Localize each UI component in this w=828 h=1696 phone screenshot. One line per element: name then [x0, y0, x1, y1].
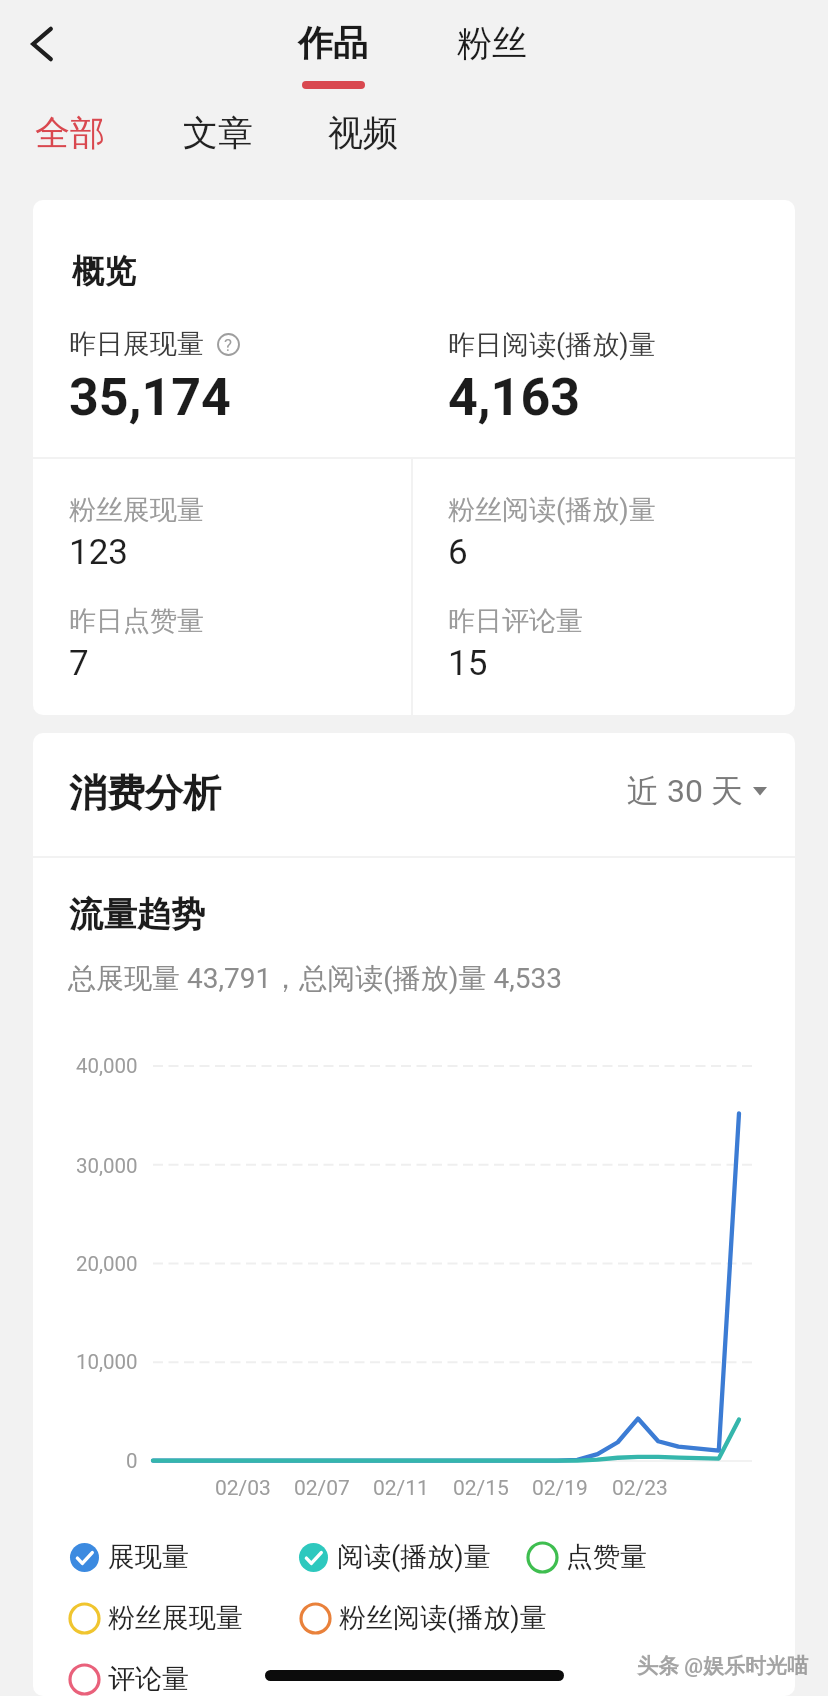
button[interactable]: 文章: [165, 97, 271, 169]
staticText: 作品: [298, 21, 368, 65]
staticText: 粉丝展现量: [69, 493, 204, 527]
staticText: 02/03: [215, 1476, 271, 1501]
staticText: 昨日展现量: [69, 327, 204, 361]
button[interactable]: 评论量: [69, 1658, 189, 1696]
staticText: 头条 @娱乐时光喵: [637, 1653, 809, 1679]
button[interactable]: 粉丝: [442, 4, 542, 96]
staticText: 15: [448, 643, 488, 684]
staticText: 点赞量: [566, 1540, 647, 1574]
staticText: 阅读(播放)量: [337, 1540, 491, 1574]
staticText: 02/15: [453, 1476, 509, 1501]
staticText: 7: [69, 643, 89, 684]
staticText: 02/11: [373, 1476, 429, 1501]
staticText: 4,163: [448, 367, 581, 428]
button[interactable]: Back: [6, 8, 78, 80]
button[interactable]: 阅读(播放)量: [298, 1536, 491, 1578]
staticText: 粉丝阅读(播放)量: [339, 1601, 547, 1635]
staticText: 昨日评论量: [448, 604, 583, 638]
staticText: 全部: [35, 111, 105, 155]
staticText: 近 30 天: [627, 771, 743, 811]
button[interactable]: 点赞量: [527, 1536, 647, 1578]
staticText: 评论量: [108, 1662, 189, 1696]
staticText: ?: [224, 335, 233, 355]
staticText: 文章: [183, 111, 253, 155]
button[interactable]: 展现量: [69, 1536, 189, 1578]
staticText: 展现量: [108, 1540, 189, 1574]
staticText: 概览: [72, 251, 136, 291]
staticText: 粉丝展现量: [108, 1601, 243, 1635]
staticText: 02/07: [294, 1476, 350, 1501]
staticText: 粉丝阅读(播放)量: [448, 493, 656, 527]
staticText: 02/19: [532, 1476, 588, 1501]
staticText: 35,174: [69, 367, 231, 428]
button[interactable]: 近 30 天: [621, 765, 773, 817]
staticText: 6: [448, 532, 468, 573]
staticText: 30,000: [76, 1154, 138, 1178]
staticText: 0: [126, 1449, 138, 1473]
staticText: 40,000: [76, 1054, 138, 1078]
staticText: 昨日点赞量: [69, 604, 204, 638]
staticText: 123: [69, 532, 129, 573]
button[interactable]: 作品: [283, 4, 383, 96]
staticText: 视频: [328, 111, 398, 155]
staticText: 20,000: [76, 1252, 138, 1276]
staticText: 粉丝: [457, 21, 527, 65]
staticText: 10,000: [76, 1350, 138, 1374]
staticText: 消费分析: [69, 769, 221, 817]
staticText: 总展现量 43,791，总阅读(播放)量 4,533: [68, 961, 562, 996]
button[interactable]: 粉丝展现量: [69, 1597, 243, 1639]
staticText: 昨日阅读(播放)量: [448, 328, 656, 362]
staticText: 流量趋势: [69, 893, 205, 936]
button[interactable]: 视频: [310, 97, 416, 169]
button[interactable]: What is this?: [217, 333, 240, 356]
staticText: 02/23: [612, 1476, 668, 1501]
button[interactable]: 粉丝阅读(播放)量: [300, 1597, 547, 1639]
button[interactable]: 全部: [17, 97, 123, 169]
